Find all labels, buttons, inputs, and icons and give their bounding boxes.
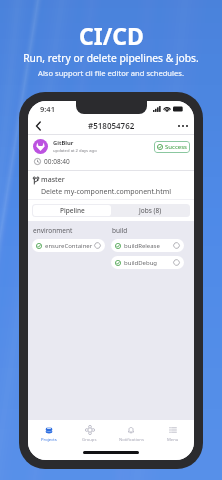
staticText: Groups (82, 437, 97, 443)
button[interactable]: ensureContainer (36, 239, 101, 252)
staticText: Pipeline (60, 206, 85, 215)
staticText: Projects (41, 437, 57, 443)
staticText: 9:41 (40, 104, 55, 114)
staticText: Success (165, 143, 187, 151)
button[interactable]: Menu (152, 425, 194, 443)
staticText: Menu (167, 437, 179, 443)
button[interactable]: Projects (28, 425, 69, 443)
button[interactable]: More options (175, 118, 191, 134)
staticText: master (41, 175, 65, 185)
staticText: buildRelease (124, 242, 160, 250)
button[interactable]: Groups (69, 425, 110, 443)
button[interactable]: Success (157, 143, 187, 151)
staticText: #518054762 (88, 120, 135, 131)
button[interactable]: Back (30, 118, 46, 134)
staticText: GitBlur (53, 139, 74, 147)
staticText: Jobs (8) (139, 206, 162, 215)
button[interactable]: buildRelease (115, 239, 180, 252)
staticText: CI/CD (79, 20, 144, 51)
staticText: Delete my-component.component.html (41, 187, 172, 197)
staticText: Also support cli file editor and schedul… (38, 68, 184, 78)
button[interactable]: Pipeline (33, 205, 111, 216)
staticText: environment (33, 226, 73, 235)
staticText: Run, retry or delete pipelines & jobs. (23, 51, 199, 65)
staticText: 00:08:40 (44, 157, 70, 166)
staticText: ensureContainer (45, 242, 93, 250)
staticText: build (112, 226, 128, 235)
staticText: updated at 2 days ago (53, 148, 97, 154)
button[interactable]: Notifications (110, 425, 152, 443)
button[interactable]: buildDebug (115, 256, 180, 269)
button[interactable]: Jobs (8) (111, 205, 189, 216)
staticText: buildDebug (124, 259, 158, 267)
staticText: Notifications (119, 437, 144, 443)
